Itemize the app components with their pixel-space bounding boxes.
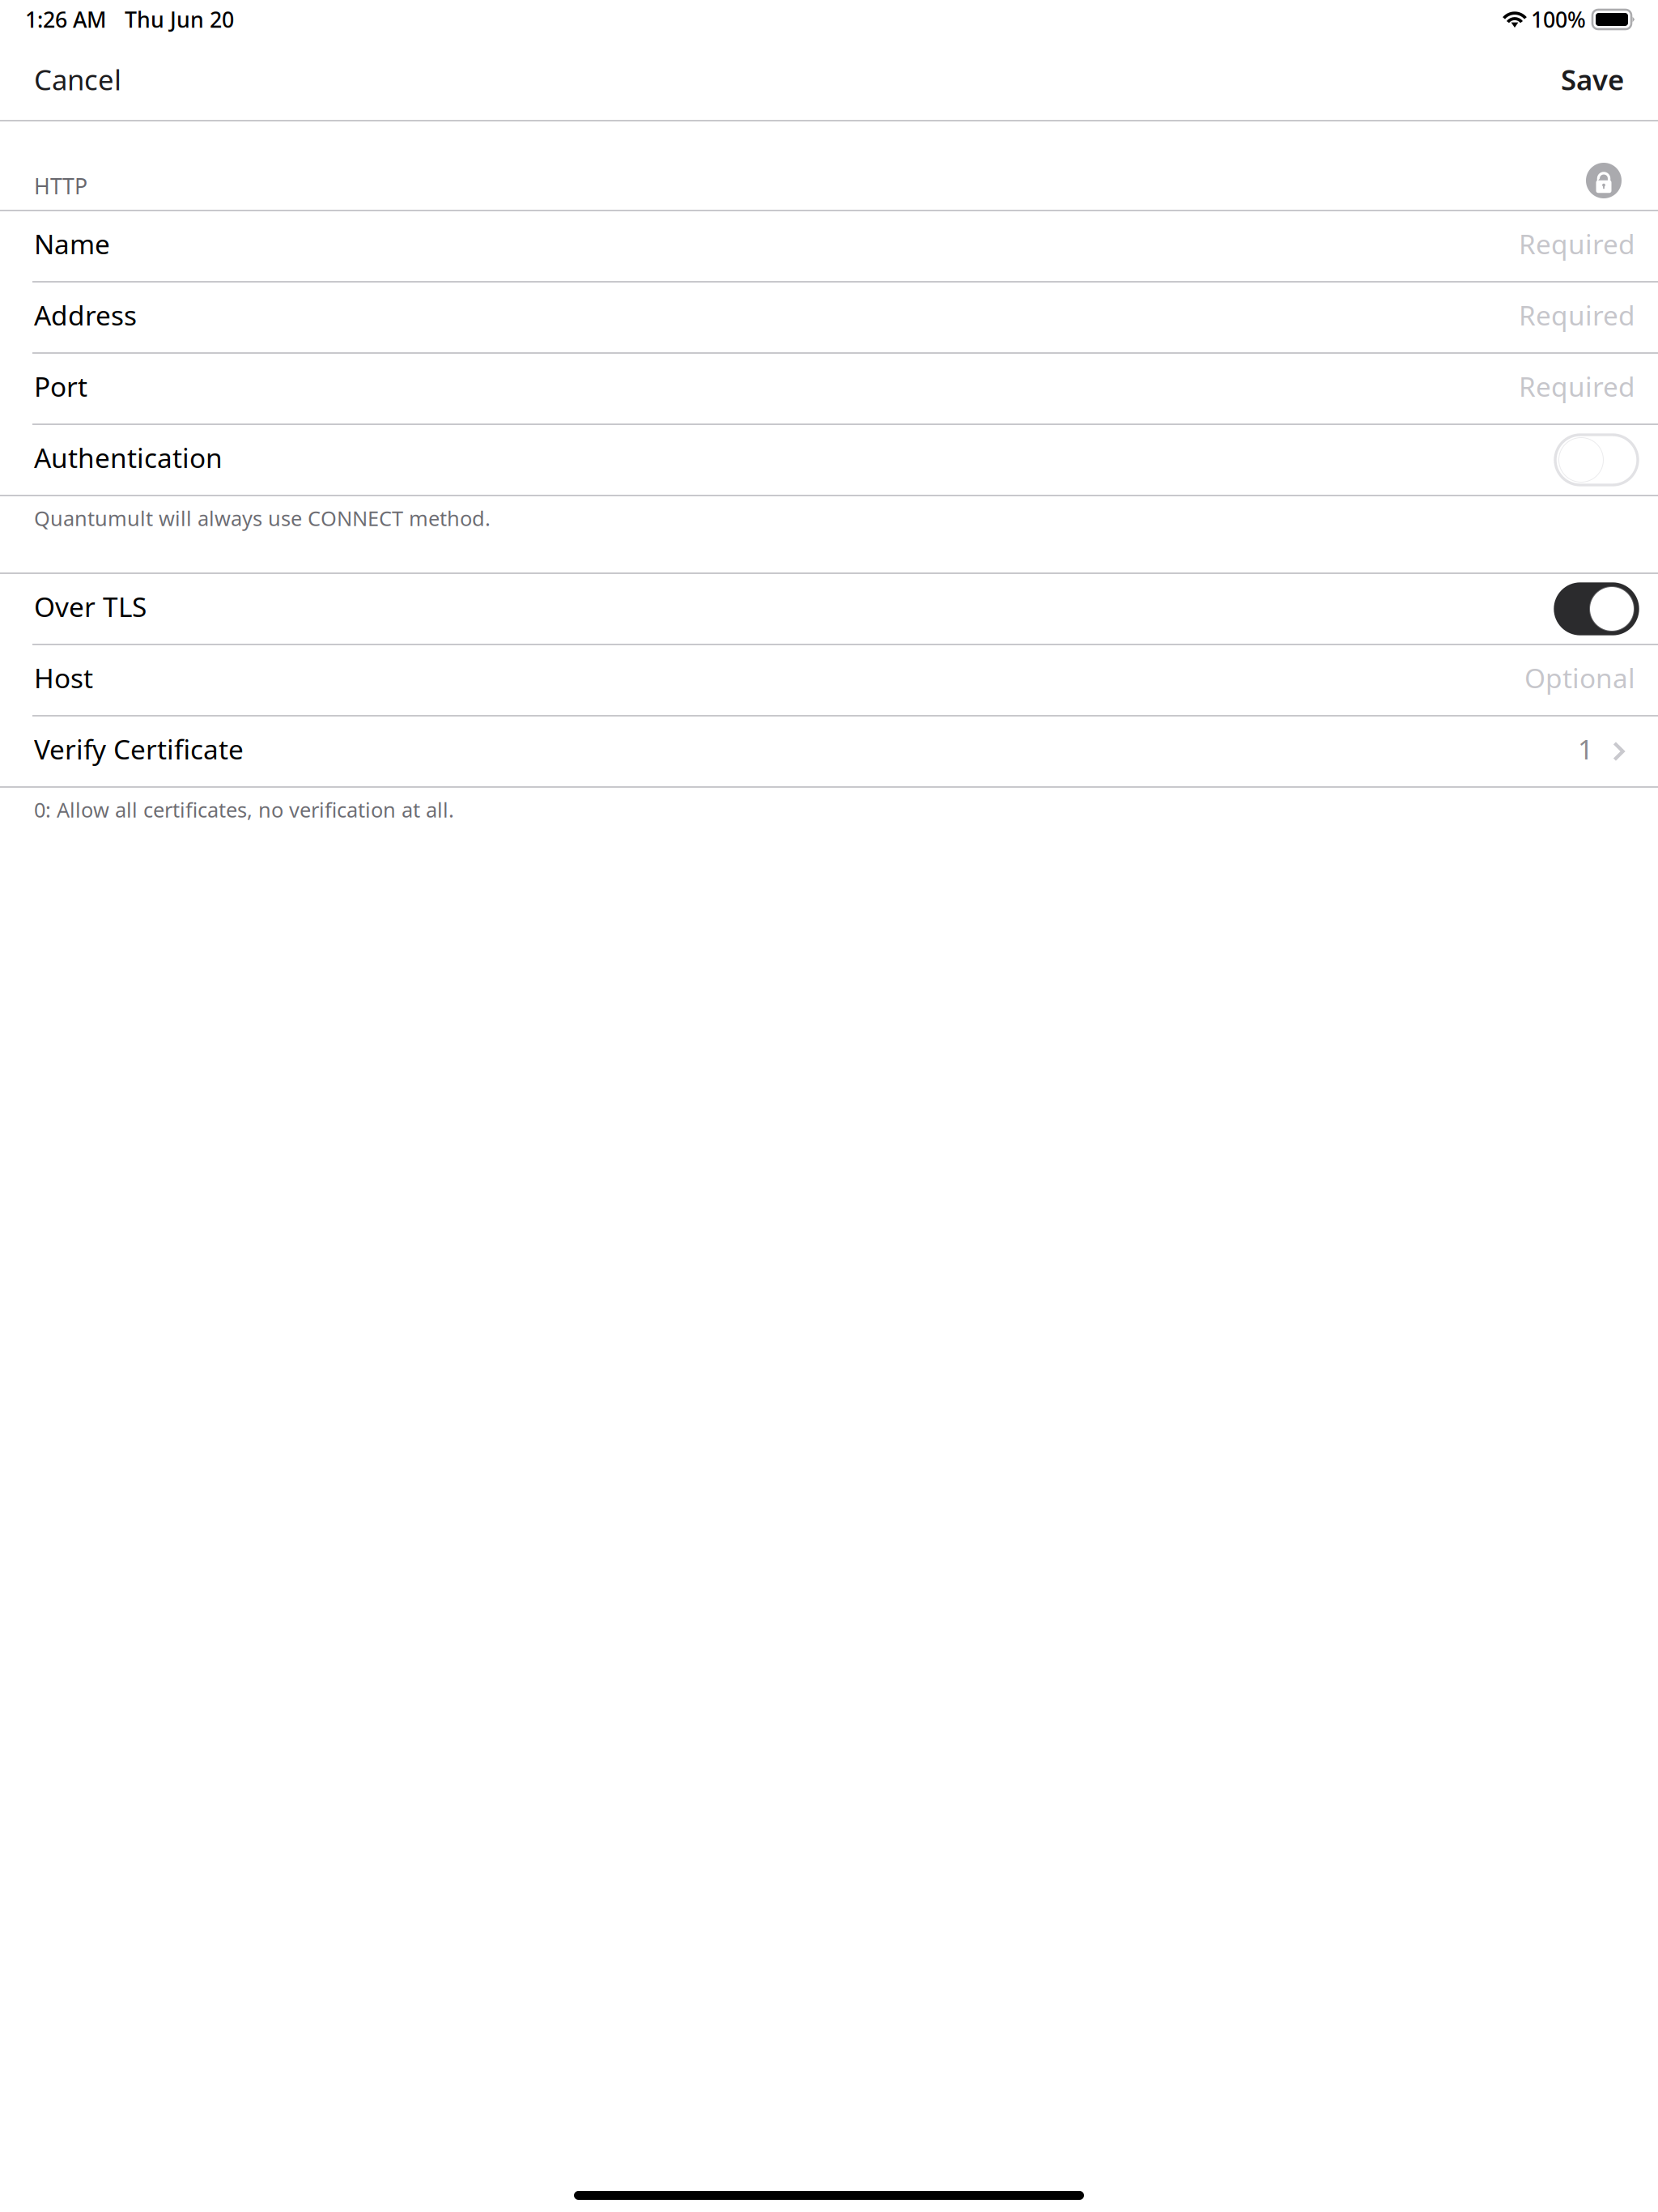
button[interactable]: Host: [0, 645, 1658, 715]
staticText: Authentication: [34, 440, 223, 475]
button[interactable]: Over TLS: [0, 574, 1658, 644]
staticText: Cancel: [34, 61, 121, 98]
staticText: Address: [34, 297, 137, 333]
staticText: Name: [34, 226, 110, 262]
staticText: 1:26 AM: [25, 5, 106, 34]
staticText: Over TLS: [34, 589, 147, 624]
button[interactable]: Address: [0, 283, 1658, 352]
staticText: Host: [34, 660, 93, 696]
button[interactable]: Port: [0, 354, 1658, 423]
staticText: 0: Allow all certificates, no verificati…: [34, 796, 454, 823]
staticText: 100%: [1531, 5, 1586, 34]
staticText: Port: [34, 368, 87, 404]
staticText: 1: [1578, 731, 1593, 767]
staticText: Required: [1519, 297, 1635, 333]
staticText: HTTP: [34, 172, 87, 200]
staticText: Quantumult will always use CONNECT metho…: [34, 504, 491, 532]
staticText: Required: [1519, 368, 1635, 404]
button[interactable]: Cancel: [0, 39, 155, 120]
staticText: Save: [1561, 61, 1624, 98]
button[interactable]: Verify Certificate: [0, 717, 1658, 786]
staticText: Thu Jun 20: [125, 5, 234, 34]
button[interactable]: Save: [1527, 39, 1658, 120]
button[interactable]: Encryption: [1586, 163, 1622, 198]
button[interactable]: Name: [0, 211, 1658, 281]
staticText: Required: [1519, 226, 1635, 262]
button[interactable]: Authentication: [0, 425, 1658, 495]
staticText: Verify Certificate: [34, 731, 244, 767]
staticText: Optional: [1524, 660, 1635, 696]
